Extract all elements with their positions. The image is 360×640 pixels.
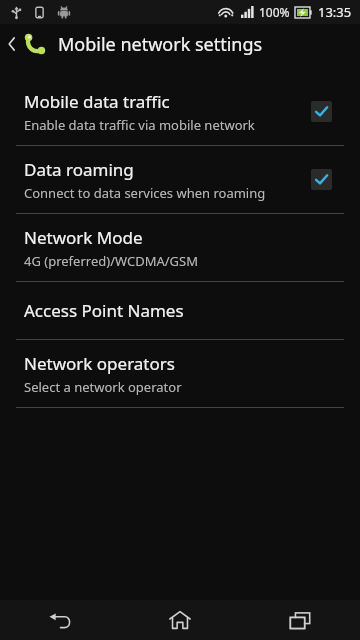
staticText: Select a network operator xyxy=(24,378,182,396)
button[interactable]: Network Mode xyxy=(0,214,360,281)
button[interactable]: Recent apps xyxy=(240,600,360,640)
staticText: Network Mode xyxy=(24,226,143,249)
button[interactable]: Back to previous screen xyxy=(0,24,360,64)
staticText: 4G (preferred)/WCDMA/GSM xyxy=(24,252,198,270)
button[interactable]: Home xyxy=(120,600,240,640)
button[interactable]: Toggle Mobile data traffic xyxy=(311,101,332,122)
button[interactable]: Toggle Data roaming xyxy=(311,169,332,190)
staticText: Access Point Names xyxy=(24,299,184,322)
staticText: 100% xyxy=(259,4,290,20)
button[interactable]: Data roaming xyxy=(0,146,360,213)
staticText: Enable data traffic via mobile network xyxy=(24,116,255,134)
staticText: Mobile network settings xyxy=(58,32,263,57)
staticText: Connect to data services when roaming xyxy=(24,184,266,202)
button[interactable]: Mobile data traffic xyxy=(0,78,360,145)
staticText: 13:35 xyxy=(318,3,352,21)
button[interactable]: Access Point Names xyxy=(0,282,360,339)
staticText: Mobile data traffic xyxy=(24,90,170,113)
button[interactable]: Back xyxy=(0,600,120,640)
staticText: Network operators xyxy=(24,352,175,375)
staticText: Data roaming xyxy=(24,158,134,181)
button[interactable]: Network operators xyxy=(0,340,360,407)
